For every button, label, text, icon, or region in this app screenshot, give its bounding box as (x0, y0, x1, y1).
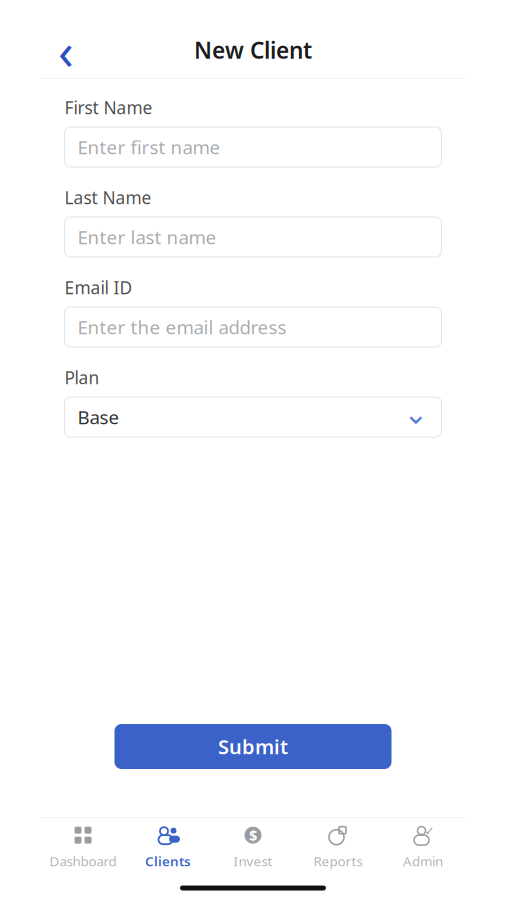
staticText: Invest (233, 852, 272, 870)
staticText: Reports (313, 852, 362, 870)
button[interactable]: Clients (125, 818, 210, 876)
staticText: Enter the email address (77, 315, 286, 339)
staticText: Submit (218, 733, 288, 760)
staticText: Plan (64, 366, 99, 389)
staticText: Enter last name (77, 225, 216, 249)
staticText: Email ID (64, 276, 132, 299)
staticText: Clients (145, 852, 191, 870)
button[interactable]: Submit (114, 724, 391, 769)
staticText: ✓ (424, 824, 434, 838)
button[interactable]: ✓ (380, 818, 465, 876)
staticText: $ (249, 825, 257, 845)
staticText: ‹ (58, 16, 74, 84)
staticText: Admin (403, 852, 443, 870)
staticText: Base (77, 405, 119, 429)
staticText: New Client (194, 35, 312, 65)
button[interactable]: Reports (295, 818, 380, 876)
staticText: Dashboard (49, 852, 116, 870)
button[interactable]: Back (44, 28, 88, 72)
button[interactable]: Dashboard (40, 818, 125, 876)
staticText: Enter first name (77, 135, 220, 159)
staticText: Last Name (64, 186, 151, 209)
button[interactable]: $ (210, 818, 295, 876)
button[interactable]: Enter the email address (64, 307, 441, 347)
button[interactable]: Base (64, 397, 441, 437)
button[interactable]: Enter first name (64, 127, 441, 167)
button[interactable]: Enter last name (64, 217, 441, 257)
staticText: ⌄ (403, 397, 428, 430)
staticText: First Name (64, 96, 152, 119)
